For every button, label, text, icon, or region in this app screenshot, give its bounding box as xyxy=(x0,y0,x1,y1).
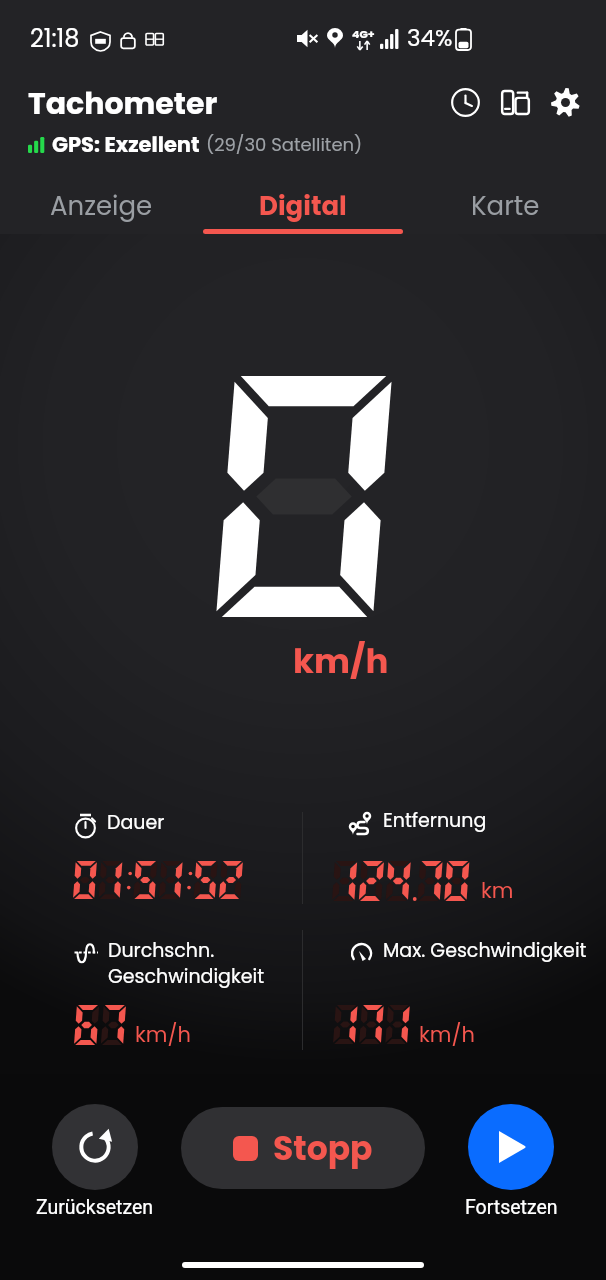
button[interactable]: Fortsetzen xyxy=(436,1104,586,1219)
staticText: GPS: Exzellent xyxy=(52,130,200,159)
staticText: Fortsetzen xyxy=(465,1196,558,1219)
staticText: Dauer xyxy=(107,809,165,836)
staticText: Entfernung xyxy=(383,807,487,834)
staticText: 34% xyxy=(407,22,453,54)
button[interactable]: Dauer xyxy=(73,809,165,841)
staticText: Anzeige xyxy=(50,188,153,224)
staticText: Stopp xyxy=(273,1125,373,1171)
button[interactable]: Bildschirm übertragen xyxy=(490,77,540,127)
staticText: (29/30 Satelliten) xyxy=(206,132,363,157)
staticText: Karte xyxy=(471,188,540,224)
staticText: km/h xyxy=(135,1020,191,1049)
button[interactable]: Karte xyxy=(404,176,606,234)
button[interactable]: Entfernung xyxy=(349,807,487,839)
button[interactable]: Zurücksetzen xyxy=(20,1104,170,1219)
staticText: Digital xyxy=(259,188,347,224)
staticText: km/h xyxy=(419,1020,475,1049)
button[interactable]: Einstellungen xyxy=(540,77,590,127)
staticText: Zurücksetzen xyxy=(36,1196,154,1219)
button[interactable]: Anzeige xyxy=(0,176,202,234)
staticText: Tachometer xyxy=(28,83,218,125)
button[interactable]: Digital xyxy=(202,176,404,234)
staticText: km xyxy=(481,876,514,905)
button[interactable]: Stopp xyxy=(181,1107,425,1189)
button[interactable]: Durchschn. Geschwindigkeit xyxy=(74,937,265,993)
button[interactable]: Max. Geschwindigkeit xyxy=(349,937,587,969)
staticText: km/h xyxy=(293,637,389,685)
staticText: Durchschn. Geschwindigkeit xyxy=(108,937,265,990)
staticText: 21:18 xyxy=(30,22,80,56)
staticText: 4G+ xyxy=(352,26,375,41)
button[interactable]: Verlauf xyxy=(440,77,490,127)
staticText: Max. Geschwindigkeit xyxy=(383,937,587,964)
